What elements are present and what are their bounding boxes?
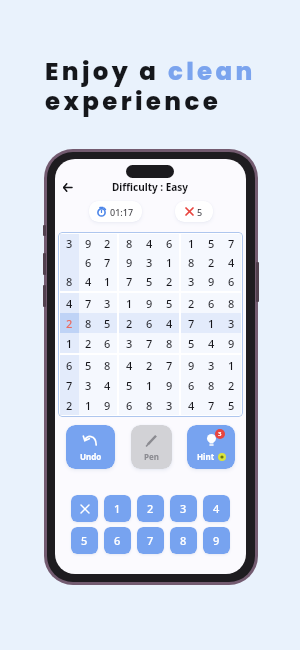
button[interactable]: 6 xyxy=(60,355,79,375)
button[interactable]: Erase xyxy=(71,495,98,522)
button[interactable]: 3 xyxy=(159,395,179,415)
button[interactable]: 2 xyxy=(181,293,201,313)
button[interactable]: 7 xyxy=(79,293,98,313)
button[interactable]: 1 xyxy=(79,395,98,415)
button[interactable]: 7 xyxy=(181,313,201,333)
button[interactable]: 2 xyxy=(221,375,241,395)
button[interactable]: 1 xyxy=(139,375,159,395)
button[interactable]: 4 xyxy=(79,272,98,291)
button[interactable]: 8 xyxy=(60,272,79,291)
button[interactable]: Back xyxy=(58,178,76,196)
button[interactable]: 4 xyxy=(98,375,117,395)
staticText: 3 xyxy=(208,358,215,373)
button[interactable]: 9 xyxy=(221,333,241,353)
button[interactable]: 2 xyxy=(60,313,79,333)
button[interactable]: 6 xyxy=(139,313,159,333)
button[interactable]: 7 xyxy=(119,272,139,291)
button[interactable]: 1 xyxy=(221,355,241,375)
button[interactable]: 3 xyxy=(79,375,98,395)
button[interactable]: 2 xyxy=(79,333,98,353)
button[interactable]: 8 xyxy=(139,395,159,415)
button[interactable]: 4 xyxy=(159,313,179,333)
button[interactable]: 5 xyxy=(181,333,201,353)
button[interactable]: 5 xyxy=(221,395,241,415)
button[interactable]: 7 xyxy=(221,234,241,253)
button[interactable]: 2 xyxy=(119,313,139,333)
button[interactable]: 1 xyxy=(201,313,221,333)
button[interactable]: 2 xyxy=(201,253,221,272)
button[interactable]: 3 xyxy=(119,333,139,353)
button[interactable]: 8 xyxy=(201,375,221,395)
staticText: 1 xyxy=(166,255,173,270)
button[interactable]: 6 xyxy=(181,375,201,395)
button[interactable]: 3 xyxy=(98,293,117,313)
button[interactable]: Undo xyxy=(66,425,115,469)
button[interactable]: 6 xyxy=(159,234,179,253)
button[interactable]: 8 xyxy=(98,355,117,375)
staticText: 6 xyxy=(146,316,153,331)
button[interactable]: 8 xyxy=(221,293,241,313)
button[interactable]: 9 xyxy=(203,527,230,554)
button[interactable]: 4 xyxy=(201,333,221,353)
button[interactable]: 5 xyxy=(71,527,98,554)
button[interactable]: 3 xyxy=(60,234,79,253)
button[interactable]: Pen xyxy=(131,425,172,469)
button[interactable]: 4 xyxy=(221,253,241,272)
button[interactable]: 2 xyxy=(139,355,159,375)
button[interactable]: 5 xyxy=(139,272,159,291)
button[interactable]: 8 xyxy=(79,313,98,333)
button[interactable]: 8 xyxy=(159,333,179,353)
button[interactable]: 6 xyxy=(221,272,241,291)
button[interactable]: 01:17 xyxy=(89,201,142,222)
button[interactable]: 9 xyxy=(119,253,139,272)
button[interactable]: 4 xyxy=(203,495,230,522)
button[interactable]: Hint xyxy=(187,425,235,469)
button[interactable]: 2 xyxy=(137,495,164,522)
button[interactable]: 7 xyxy=(137,527,164,554)
button[interactable]: 4 xyxy=(119,355,139,375)
button[interactable]: 3 xyxy=(221,313,241,333)
button[interactable]: 6 xyxy=(104,527,131,554)
button[interactable]: 7 xyxy=(159,355,179,375)
button[interactable]: 7 xyxy=(201,395,221,415)
button[interactable]: 7 xyxy=(60,375,79,395)
button[interactable]: 8 xyxy=(170,527,197,554)
button[interactable]: 9 xyxy=(79,234,98,253)
button[interactable]: 9 xyxy=(159,375,179,395)
button[interactable]: 8 xyxy=(119,234,139,253)
button[interactable]: 5 xyxy=(98,313,117,333)
button[interactable]: 6 xyxy=(98,333,117,353)
button[interactable]: 9 xyxy=(181,355,201,375)
button[interactable]: 1 xyxy=(181,234,201,253)
button[interactable]: 9 xyxy=(201,272,221,291)
button[interactable]: 2 xyxy=(98,234,117,253)
button[interactable]: 6 xyxy=(201,293,221,313)
button[interactable]: 3 xyxy=(170,495,197,522)
button[interactable]: 5 xyxy=(201,234,221,253)
button[interactable]: 2 xyxy=(159,272,179,291)
button[interactable]: 5 xyxy=(119,375,139,395)
button[interactable]: 3 xyxy=(139,253,159,272)
button[interactable]: 4 xyxy=(139,234,159,253)
button[interactable]: 6 xyxy=(79,253,98,272)
button[interactable]: 7 xyxy=(139,333,159,353)
button[interactable]: 9 xyxy=(98,395,117,415)
button[interactable]: 1 xyxy=(104,495,131,522)
button[interactable]: 1 xyxy=(159,253,179,272)
button[interactable]: 1 xyxy=(60,333,79,353)
button[interactable]: 1 xyxy=(119,293,139,313)
button[interactable]: 5 xyxy=(159,293,179,313)
button[interactable]: 4 xyxy=(60,293,79,313)
button[interactable]: 3 xyxy=(181,272,201,291)
button[interactable]: 3 xyxy=(201,355,221,375)
button[interactable]: 1 xyxy=(98,272,117,291)
button[interactable]: 2 xyxy=(60,395,79,415)
button[interactable]: 5 xyxy=(79,355,98,375)
button[interactable]: 9 xyxy=(139,293,159,313)
button[interactable]: 4 xyxy=(181,395,201,415)
button[interactable]: 7 xyxy=(98,253,117,272)
button[interactable]: 8 xyxy=(181,253,201,272)
button[interactable]: 6 xyxy=(119,395,139,415)
button[interactable]: 5 xyxy=(175,201,213,222)
